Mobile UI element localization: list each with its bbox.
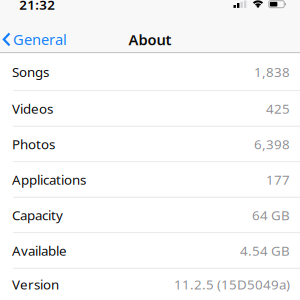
staticText: 64 GB <box>252 206 290 224</box>
staticText: Photos <box>12 135 55 153</box>
staticText: 177 <box>266 170 290 189</box>
staticText: Applications <box>12 170 86 189</box>
staticText: 11.2.5 (15D5049a) <box>174 275 290 293</box>
staticText: Capacity <box>12 206 63 224</box>
staticText: 425 <box>266 99 290 118</box>
button[interactable]: Version <box>0 269 300 300</box>
staticText: Available <box>12 241 67 260</box>
staticText: About <box>128 30 171 49</box>
staticText: 1,838 <box>254 63 290 81</box>
staticText: Songs <box>12 63 49 81</box>
staticText: 4.54 GB <box>240 241 290 260</box>
staticText: 6,398 <box>254 135 290 153</box>
staticText: Videos <box>12 99 53 118</box>
staticText: 21:32 <box>19 0 55 13</box>
button[interactable]: Back to General <box>0 30 67 49</box>
staticText: Version <box>12 275 59 293</box>
staticText: General <box>13 30 67 49</box>
